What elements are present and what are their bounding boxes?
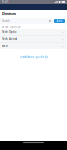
- button[interactable]: Wi-Fi: [0, 43, 67, 49]
- staticText: Wi-Fi: [2, 44, 8, 48]
- staticText: Tech Aerial: [2, 37, 17, 41]
- staticText: Search: [2, 19, 10, 23]
- button[interactable]: Tech Aerial: [0, 36, 67, 42]
- staticText: Tech Optix: [2, 30, 16, 34]
- staticText: Add: [56, 19, 62, 23]
- staticText: ›: [62, 43, 63, 49]
- staticText: MY DEVICES: [5, 25, 20, 29]
- staticText: Devices: [2, 11, 16, 16]
- button[interactable]: Add: [54, 19, 65, 23]
- button[interactable]: installation guide: [0, 49, 67, 61]
- staticText: installation guide: [19, 55, 44, 59]
- button[interactable]: Tech Optix: [0, 29, 67, 35]
- staticText: 9:41: [2, 0, 9, 4]
- staticText: ›: [62, 36, 63, 42]
- staticText: ›: [62, 29, 63, 35]
